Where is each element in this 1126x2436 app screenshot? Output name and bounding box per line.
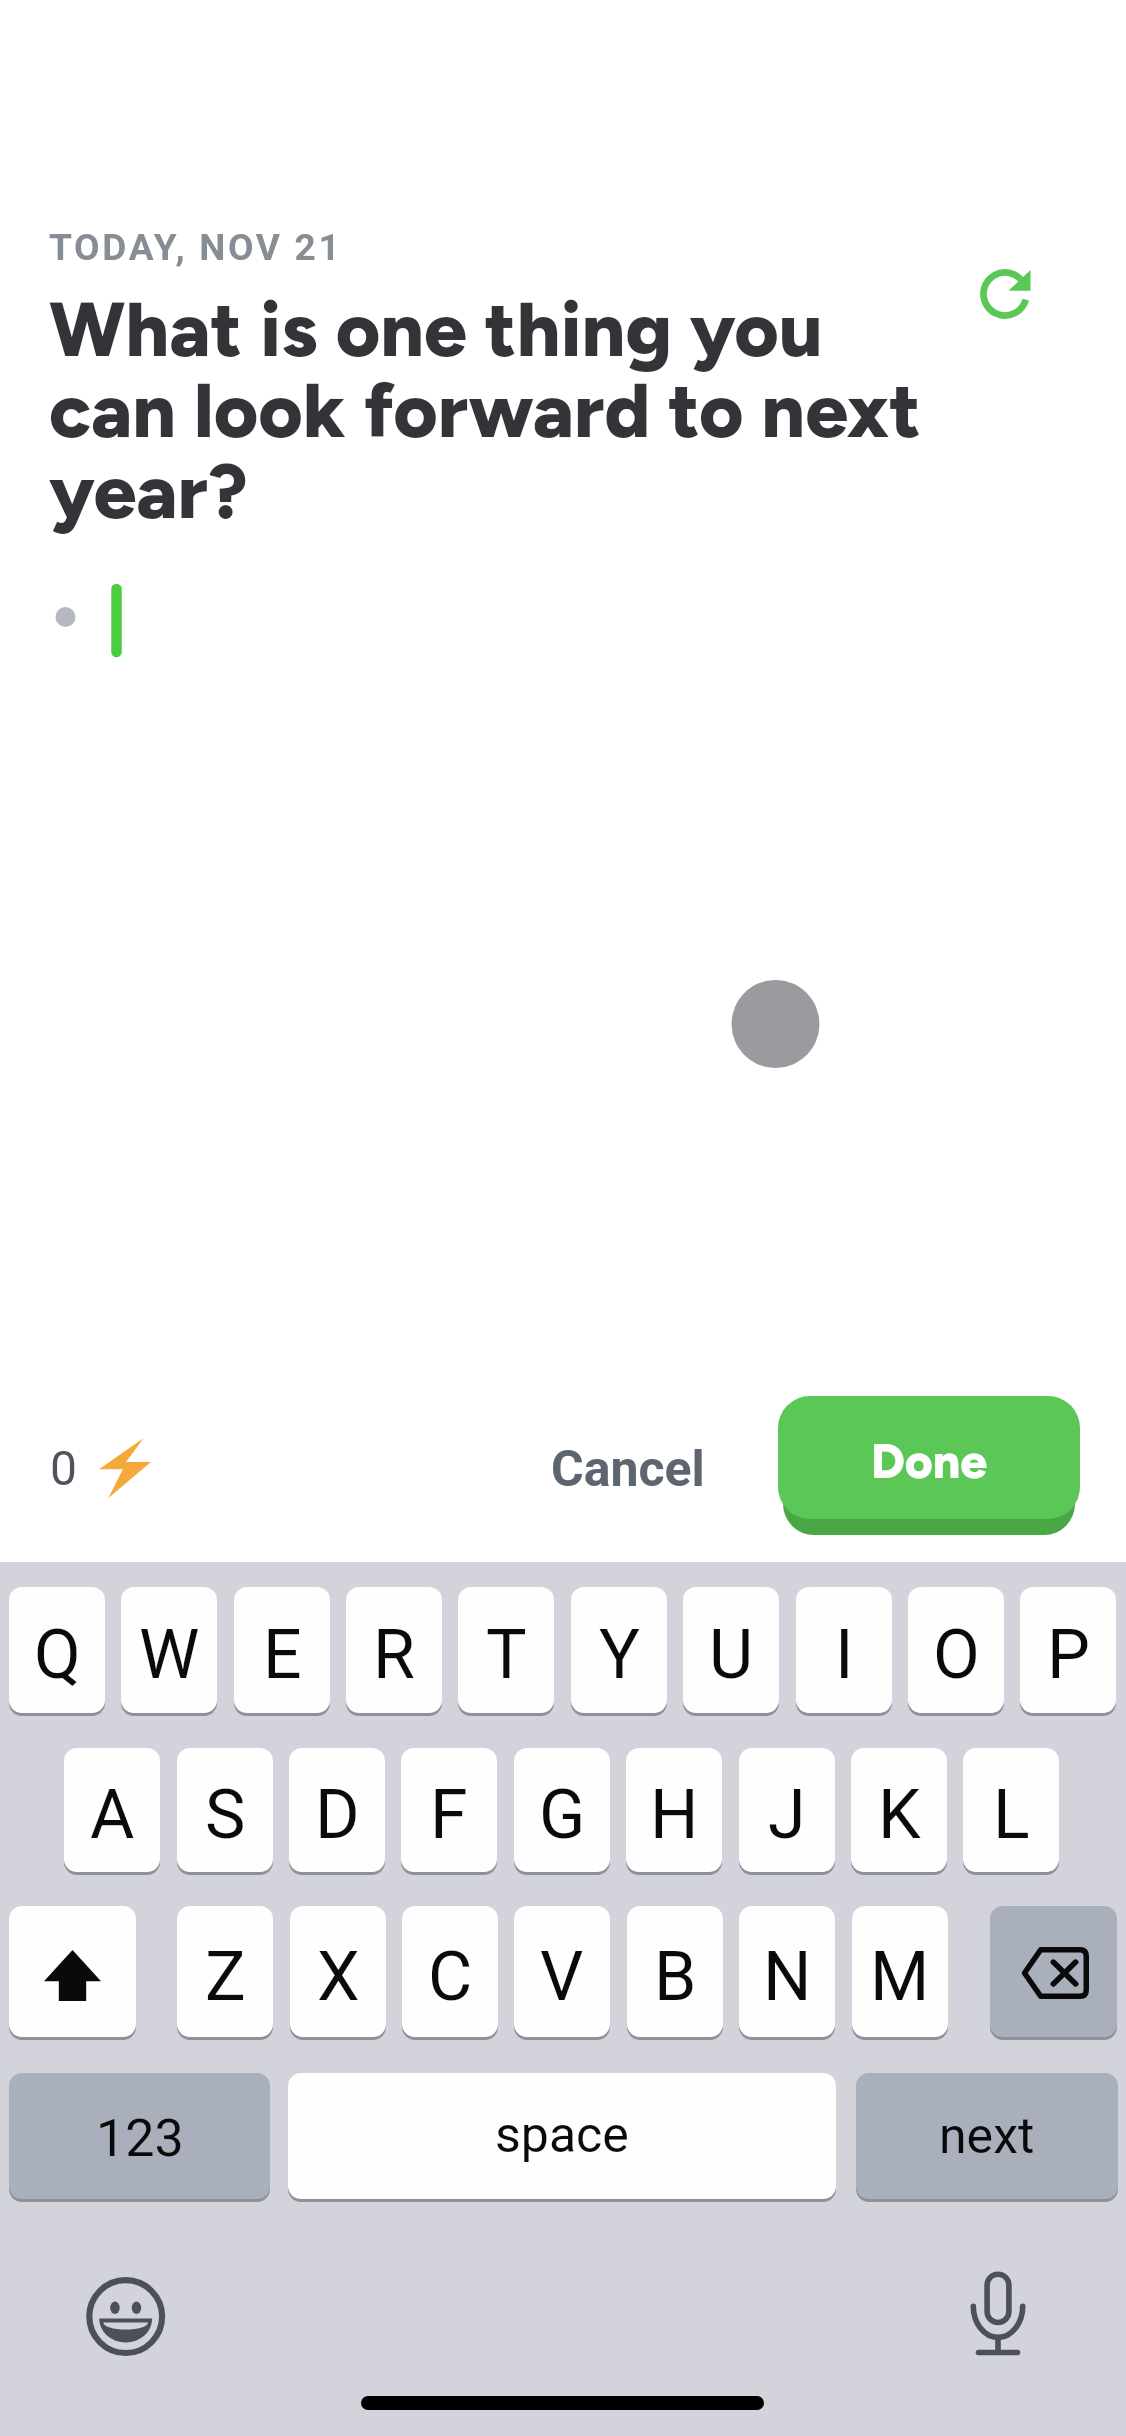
staticText: Y: [599, 1615, 640, 1695]
button[interactable]: P: [1020, 1587, 1116, 1713]
button[interactable]: V: [514, 1906, 610, 2037]
button[interactable]: J: [739, 1748, 835, 1872]
staticText: Done: [871, 1432, 988, 1490]
button[interactable]: O: [908, 1587, 1004, 1713]
staticText: I: [835, 1615, 854, 1695]
staticText: C: [428, 1937, 473, 2017]
staticText: O: [933, 1615, 980, 1695]
button[interactable]: U: [683, 1587, 779, 1713]
button[interactable]: F: [401, 1748, 497, 1872]
button[interactable]: W: [121, 1587, 217, 1713]
staticText: X: [317, 1937, 360, 2017]
staticText: W: [139, 1615, 200, 1695]
button[interactable]: G: [514, 1748, 610, 1872]
button[interactable]: A: [64, 1748, 160, 1872]
staticText: D: [315, 1775, 360, 1855]
button[interactable]: New prompt: [955, 244, 1055, 344]
staticText: L: [993, 1775, 1030, 1855]
staticText: TODAY, NOV 21: [49, 226, 343, 269]
staticText: A: [90, 1775, 135, 1855]
staticText: R: [373, 1615, 415, 1695]
staticText: V: [540, 1937, 584, 2017]
button[interactable]: D: [289, 1748, 385, 1872]
staticText: What is one thing you can look forward t…: [49, 283, 949, 537]
staticText: M: [870, 1937, 930, 2017]
button[interactable]: Backspace: [990, 1906, 1117, 2037]
staticText: Q: [34, 1615, 81, 1695]
staticText: B: [654, 1937, 697, 2017]
button[interactable]: Y: [571, 1587, 667, 1713]
button[interactable]: Q: [9, 1587, 105, 1713]
staticText: N: [763, 1937, 812, 2017]
staticText: S: [205, 1775, 246, 1855]
staticText: Cancel: [551, 1440, 705, 1499]
button[interactable]: R: [346, 1587, 442, 1713]
staticText: J: [768, 1775, 806, 1855]
staticText: T: [486, 1615, 527, 1695]
button[interactable]: H: [626, 1748, 722, 1872]
button[interactable]: N: [739, 1906, 835, 2037]
staticText: next: [939, 2107, 1035, 2166]
button[interactable]: 0: [28, 1424, 173, 1512]
button[interactable]: 123: [9, 2073, 270, 2199]
button[interactable]: Emoji keyboard: [83, 2274, 169, 2360]
staticText: 0: [50, 1440, 77, 1496]
staticText: K: [878, 1775, 921, 1855]
button[interactable]: Done: [778, 1396, 1080, 1519]
button[interactable]: X: [290, 1906, 386, 2037]
staticText: space: [495, 2106, 629, 2165]
button[interactable]: E: [234, 1587, 330, 1713]
button[interactable]: space: [288, 2073, 836, 2199]
button[interactable]: S: [177, 1748, 273, 1872]
button[interactable]: Voice input: [965, 2265, 1033, 2360]
staticText: H: [650, 1775, 699, 1855]
button[interactable]: Shift: [9, 1906, 136, 2037]
button[interactable]: M: [852, 1906, 948, 2037]
staticText: U: [709, 1615, 754, 1695]
staticText: P: [1047, 1615, 1090, 1695]
button[interactable]: L: [963, 1748, 1059, 1872]
button[interactable]: Answer text field: [42, 572, 1082, 668]
button[interactable]: B: [627, 1906, 723, 2037]
button[interactable]: Z: [177, 1906, 273, 2037]
button[interactable]: I: [796, 1587, 892, 1713]
staticText: F: [430, 1775, 468, 1855]
staticText: G: [539, 1775, 586, 1855]
button[interactable]: C: [402, 1906, 498, 2037]
button[interactable]: next: [856, 2073, 1118, 2199]
staticText: 123: [96, 2108, 184, 2169]
button[interactable]: Cancel: [521, 1424, 735, 1515]
staticText: Z: [205, 1937, 246, 2017]
button[interactable]: T: [458, 1587, 554, 1713]
button[interactable]: K: [851, 1748, 947, 1872]
staticText: E: [263, 1615, 302, 1695]
